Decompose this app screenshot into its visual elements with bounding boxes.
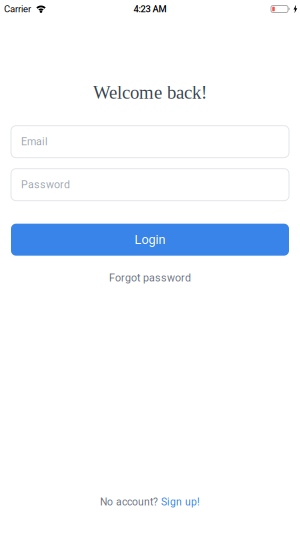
button[interactable]: Password <box>11 169 289 201</box>
button[interactable]: Sign up! <box>161 496 200 508</box>
staticText: Carrier <box>4 3 31 15</box>
button[interactable]: Login <box>11 224 289 256</box>
staticText: Sign up! <box>161 496 200 508</box>
staticText: Email <box>21 135 48 148</box>
staticText: 4:23 AM <box>133 3 166 14</box>
staticText: Password <box>21 178 70 191</box>
button[interactable]: Forgot password <box>109 272 191 284</box>
staticText: Login <box>134 232 165 247</box>
staticText: Welcome back! <box>93 82 207 103</box>
button[interactable]: Email <box>11 126 289 158</box>
staticText: No account? <box>100 496 158 508</box>
staticText: Forgot password <box>109 272 191 284</box>
